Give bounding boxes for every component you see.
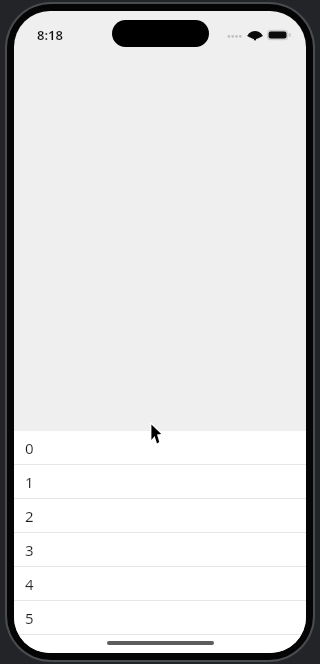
staticText: 0 (25, 438, 34, 458)
staticText: 8:18 (37, 26, 63, 44)
staticText: 4 (25, 574, 34, 594)
staticText: 5 (25, 608, 34, 628)
button[interactable]: 1 (14, 465, 306, 499)
button[interactable]: 2 (14, 499, 306, 533)
staticText: 3 (25, 540, 34, 560)
button[interactable]: 5 (14, 601, 306, 635)
button[interactable]: 3 (14, 533, 306, 567)
button[interactable]: 4 (14, 567, 306, 601)
staticText: 2 (25, 506, 34, 526)
staticText: 1 (25, 472, 34, 492)
button[interactable]: 0 (14, 431, 306, 465)
